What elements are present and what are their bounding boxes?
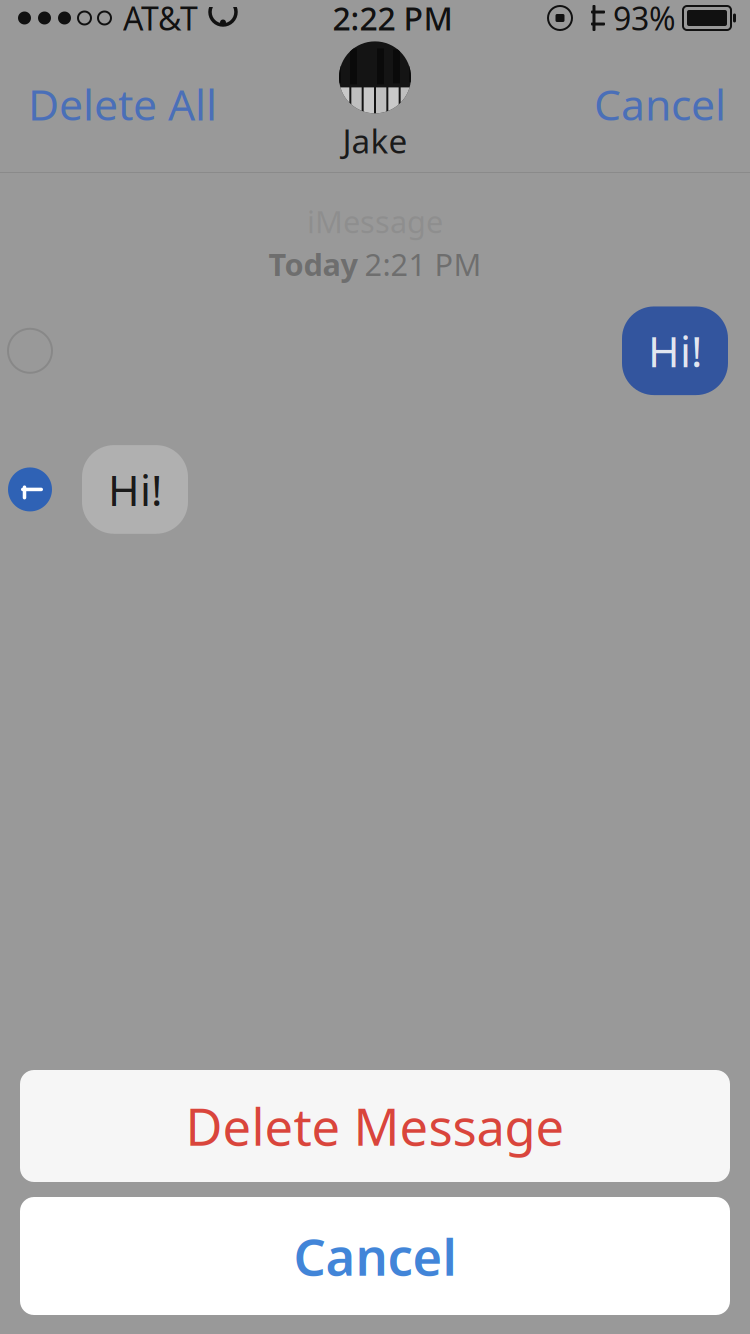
button[interactable]: Select message [0,321,60,381]
staticText: 2:21 PM [364,244,481,284]
button[interactable]: Message selected [0,459,60,519]
button[interactable]: Delete All [0,62,245,146]
staticText: Hi! [108,461,162,518]
button[interactable]: Cancel [20,1197,730,1315]
staticText: 93% [613,0,676,39]
button[interactable]: Cancel [570,62,750,146]
staticText: AT&T [123,0,198,39]
button[interactable]: Delete Message [20,1070,730,1182]
staticText: Jake [342,118,407,163]
staticText: Cancel [293,1222,456,1290]
staticText: Hi! [648,322,702,379]
staticText: Delete All [28,76,217,132]
staticText: 2:22 PM [332,0,452,39]
staticText: Delete Message [185,1092,564,1160]
staticText: iMessage [307,201,443,242]
staticText: Today [268,244,358,284]
staticText: Cancel [594,76,726,132]
